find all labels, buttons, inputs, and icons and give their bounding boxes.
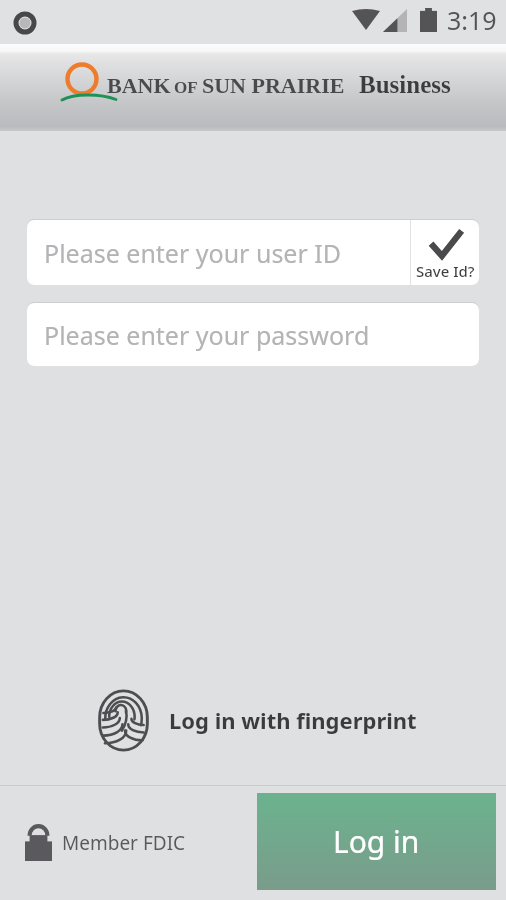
- staticText: Member FDIC: [62, 830, 186, 856]
- staticText: SUN PRAIRIE: [202, 73, 345, 97]
- button[interactable]: Please enter your user ID: [27, 220, 410, 285]
- button[interactable]: Log in with fingerprint: [97, 686, 417, 754]
- staticText: Business: [359, 71, 451, 99]
- staticText: 3:19: [447, 3, 497, 37]
- staticText: OF: [174, 78, 198, 97]
- button[interactable]: Save Id: [411, 220, 479, 285]
- staticText: Please enter your user ID: [44, 236, 342, 270]
- button[interactable]: Log in: [257, 793, 496, 890]
- staticText: Log in with fingerprint: [169, 705, 417, 735]
- staticText: BANK: [107, 73, 171, 97]
- other: Notification: [14, 12, 36, 34]
- button[interactable]: Member FDIC: [25, 824, 186, 861]
- staticText: Save Id?: [416, 261, 475, 281]
- button[interactable]: Please enter your password: [27, 303, 479, 366]
- staticText: Please enter your password: [44, 318, 370, 352]
- staticText: Log in: [333, 821, 420, 862]
